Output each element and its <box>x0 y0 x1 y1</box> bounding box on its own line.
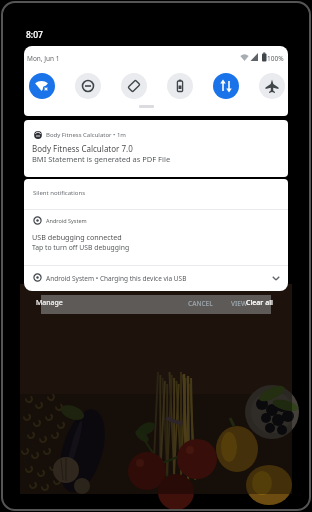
button[interactable] <box>24 214 288 254</box>
staticText: Android System <box>46 217 87 224</box>
staticText: Body Fitness Calculator 7.0 <box>32 143 133 154</box>
staticText: Mon, Jun 1 <box>27 54 60 63</box>
staticText: 8:07 <box>26 29 43 41</box>
button[interactable] <box>121 73 147 99</box>
staticText: BMI Statement is generated as PDF File <box>32 154 171 164</box>
button[interactable]: CANCEL <box>188 299 213 308</box>
button[interactable]: VIEW <box>231 299 248 308</box>
button[interactable]: Clear all <box>246 298 273 308</box>
staticText: Body Fitness Calculator • 1m <box>46 131 126 139</box>
button[interactable]: Android System • Charging this device vi… <box>24 266 288 291</box>
button[interactable] <box>259 73 285 99</box>
staticText: Tap to turn off USB debugging <box>32 243 130 252</box>
button[interactable] <box>167 73 193 99</box>
staticText: USB debugging connected <box>32 232 122 242</box>
staticText: Silent notifications <box>33 189 86 197</box>
button[interactable] <box>29 73 55 99</box>
button[interactable]: Body Fitness Calculator • 1m <box>24 120 288 177</box>
button[interactable]: Manage <box>36 298 63 308</box>
button[interactable] <box>213 73 239 99</box>
staticText: 100% <box>267 54 284 63</box>
staticText: Android System • Charging this device vi… <box>46 274 187 283</box>
button[interactable] <box>75 73 101 99</box>
